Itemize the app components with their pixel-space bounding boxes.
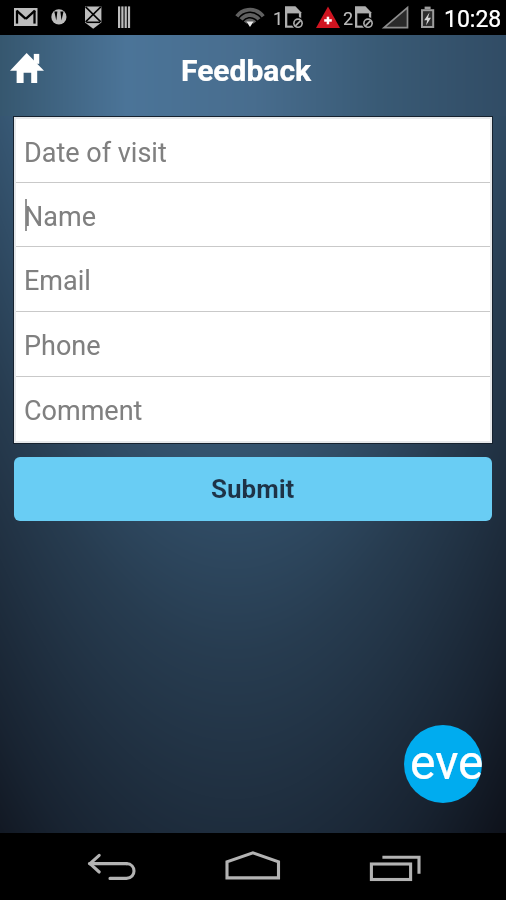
staticText: Comment xyxy=(24,395,143,427)
button[interactable]: Submit xyxy=(14,457,492,521)
button[interactable]: Date of visit xyxy=(16,119,490,182)
button[interactable]: Name xyxy=(16,183,490,246)
staticText: 10:28 xyxy=(444,6,502,33)
button[interactable]: eve xyxy=(404,725,482,803)
staticText: Email xyxy=(24,265,91,297)
button[interactable]: Home xyxy=(2,43,51,92)
staticText: Submit xyxy=(211,474,295,504)
button[interactable]: Recent apps xyxy=(368,854,424,888)
button[interactable]: Home xyxy=(224,851,282,885)
staticText: 1 xyxy=(273,8,284,29)
staticText: Feedback xyxy=(181,53,312,88)
staticText: Name xyxy=(24,201,96,233)
button[interactable]: Comment xyxy=(16,377,490,441)
staticText: Date of visit xyxy=(24,137,167,169)
staticText: 2 xyxy=(343,8,354,29)
staticText: eve xyxy=(410,734,482,790)
button[interactable]: Email xyxy=(16,247,490,311)
staticText: Phone xyxy=(24,330,101,362)
button[interactable]: Back xyxy=(84,847,140,887)
button[interactable]: Phone xyxy=(16,312,490,376)
